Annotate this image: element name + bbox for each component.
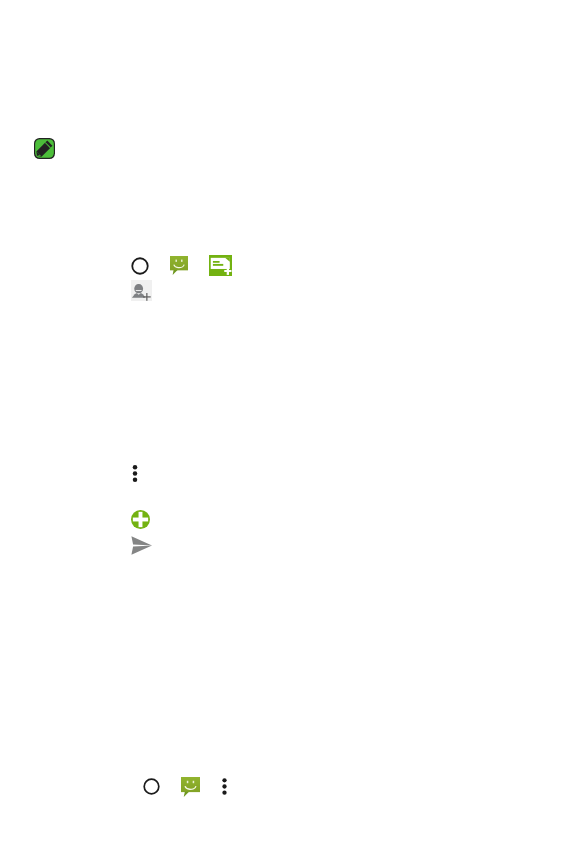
button[interactable]: Home	[143, 778, 160, 795]
button[interactable]: More options	[217, 775, 232, 798]
button[interactable]: More options	[127, 461, 143, 486]
button[interactable]: Messaging	[170, 256, 188, 275]
button[interactable]: Send	[131, 535, 152, 556]
button[interactable]: Home	[131, 257, 149, 275]
button[interactable]: Messaging	[181, 777, 200, 797]
button[interactable]: Compose message	[34, 138, 55, 159]
button[interactable]: Add	[131, 510, 150, 529]
button[interactable]: New message	[209, 255, 232, 276]
button[interactable]: Add person	[131, 280, 152, 301]
